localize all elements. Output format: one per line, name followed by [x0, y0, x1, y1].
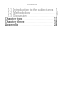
button[interactable]: Chapter two: [0, 17, 64, 20]
button[interactable]: 1.3 Discussion: [0, 14, 64, 17]
staticText: 7: [56, 14, 58, 17]
button[interactable]: Appendix: [0, 23, 64, 26]
staticText: 1.3 Discussion: [8, 14, 27, 17]
staticText: 18: [54, 20, 58, 23]
staticText: Appendix: [5, 23, 19, 26]
staticText: 1.2 Methodology: [8, 11, 31, 14]
button[interactable]: 1.2 Methodology: [0, 11, 64, 14]
button[interactable]: Chapter three: [0, 20, 64, 23]
staticText: Chapter three: [5, 20, 25, 23]
staticText: Chapter two: [5, 17, 23, 20]
staticText: 4: [56, 11, 58, 14]
staticText: 11: [54, 17, 58, 20]
staticText: 24: [54, 23, 58, 26]
button[interactable]: 1.1 Introduction to the subject area: [0, 8, 64, 11]
staticText: Contents: [0, 2, 64, 5]
staticText: 1.1 Introduction to the subject area: [8, 8, 54, 11]
staticText: 1: [56, 8, 58, 11]
